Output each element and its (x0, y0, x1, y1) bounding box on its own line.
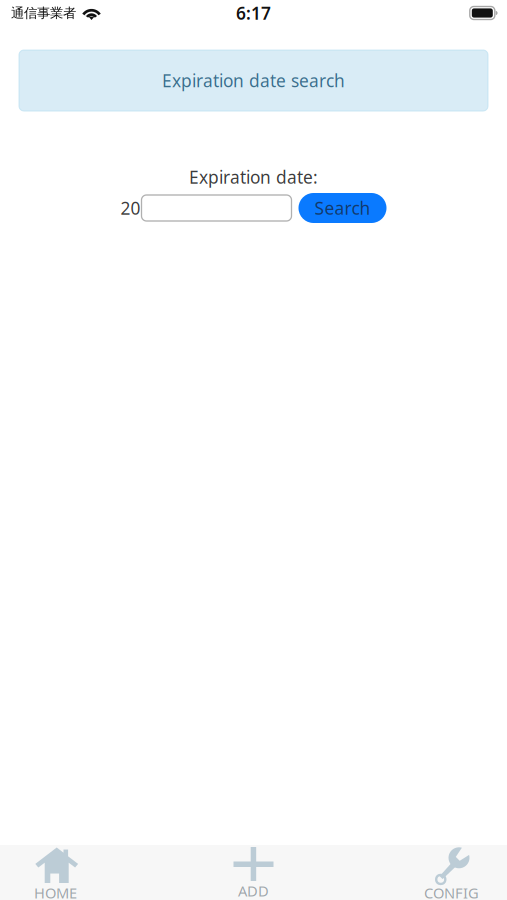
staticText: HOME (34, 883, 77, 900)
staticText: 6:17 (236, 1, 271, 24)
button[interactable]: Expiration year (141, 195, 291, 221)
button[interactable]: ADD (198, 843, 309, 900)
staticText: 20 (120, 196, 140, 219)
button[interactable]: Expiration date search (19, 50, 488, 111)
staticText: Expiration date search (162, 69, 345, 92)
staticText: Expiration date: (189, 165, 318, 188)
button[interactable]: HOME (0, 843, 111, 900)
staticText: Search (314, 196, 370, 219)
staticText: CONFIG (424, 883, 479, 900)
button[interactable]: CONFIG (396, 843, 507, 900)
button[interactable]: Search (298, 193, 386, 223)
staticText: 通信事業者 (11, 5, 76, 21)
staticText: ADD (238, 881, 269, 900)
